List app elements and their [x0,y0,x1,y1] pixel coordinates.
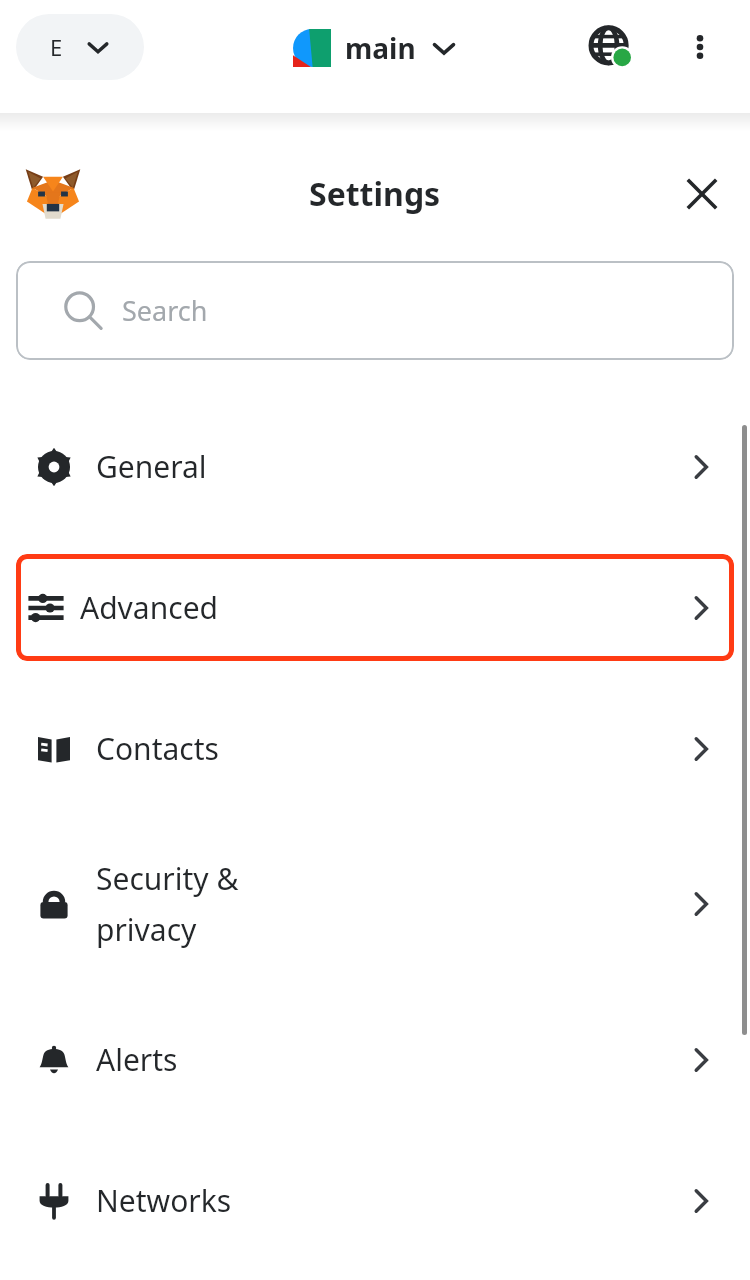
staticText: General [96,446,207,487]
staticText: Contacts [96,728,219,769]
staticText: Networks [96,1180,232,1221]
button[interactable]: Network connected [578,14,644,80]
button[interactable]: More options [667,14,733,80]
staticText: privacy [96,909,197,950]
button[interactable]: Contacts [0,678,750,819]
button[interactable]: Security & [0,819,750,989]
staticText: Alerts [96,1039,178,1080]
staticText: Security & [96,858,239,899]
button[interactable]: Search [16,261,734,360]
button[interactable]: Networks [0,1130,750,1271]
staticText: Search [122,292,208,329]
button[interactable]: Alerts [0,989,750,1130]
staticText: Advanced [80,587,218,628]
button[interactable]: Account type [16,14,144,80]
staticText: E [50,32,63,62]
button[interactable]: Advanced [16,554,734,661]
button[interactable]: Close [671,163,733,225]
staticText: Settings [309,172,441,216]
button[interactable]: main [293,20,458,76]
button[interactable]: General [0,396,750,537]
staticText: main [345,29,416,67]
